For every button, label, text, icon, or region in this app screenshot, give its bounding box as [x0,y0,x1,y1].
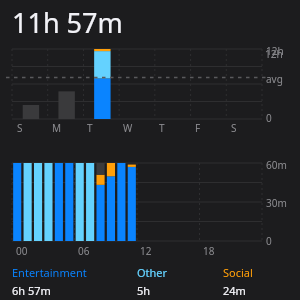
staticText: avg [266,72,283,86]
staticText: F [195,121,201,135]
staticText: W [123,121,133,135]
staticText: 06 [78,244,90,258]
staticText: 12h [265,47,283,61]
staticText: 0 [266,111,272,125]
staticText: 60m [266,158,287,172]
staticText: Other [137,265,168,280]
staticText: Social [223,265,253,280]
staticText: S [17,121,23,135]
staticText: M [52,121,62,135]
staticText: T [159,121,165,135]
button[interactable]: 60m [0,161,300,261]
staticText: 12 [140,244,152,258]
staticText: 12h [266,44,284,58]
staticText: S [231,121,237,135]
button[interactable]: Other [137,265,223,298]
button[interactable]: Social [223,265,288,298]
button[interactable]: Entertainment [12,265,137,298]
staticText: 30m [266,196,287,210]
staticText: T [87,121,93,135]
staticText: 0 [266,234,272,248]
staticText: 5h [137,283,151,298]
staticText: 6h 57m [12,283,51,298]
staticText: 24m [223,283,246,298]
staticText: 18 [203,244,215,258]
staticText: 11h 57m [12,4,123,41]
staticText: 00 [16,244,28,258]
button[interactable]: 12h [0,47,300,139]
staticText: Entertainment [12,265,87,280]
